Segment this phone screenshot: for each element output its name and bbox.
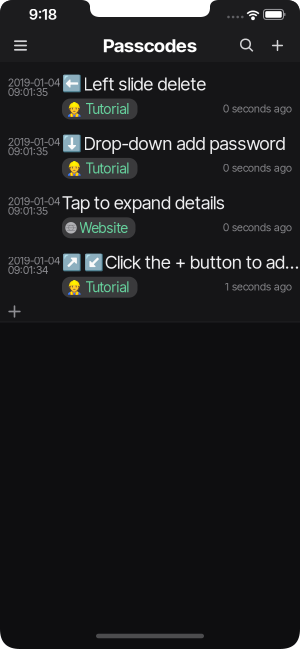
button[interactable]: Add entry: [0, 297, 300, 323]
button[interactable]: 2019-01-04: [0, 250, 300, 310]
staticText: 0 seconds ago: [223, 221, 292, 234]
staticText: 9:18: [29, 6, 57, 23]
staticText: Drop-down add password: [83, 132, 285, 154]
button[interactable]: Menu: [7, 33, 33, 57]
staticText: ⬇️: [62, 134, 82, 153]
staticText: 👷: [65, 101, 82, 117]
staticText: 09:01:35: [8, 85, 48, 98]
staticText: Left slide delete: [83, 73, 206, 95]
staticText: 0 seconds ago: [223, 161, 292, 174]
staticText: 09:01:34: [8, 264, 48, 277]
staticText: Tap to expand details: [62, 192, 225, 214]
button[interactable]: 2019-01-04: [0, 72, 300, 131]
staticText: 09:01:35: [8, 204, 48, 217]
button[interactable]: 2019-01-04: [0, 131, 300, 191]
staticText: 2019-01-04: [8, 76, 60, 89]
staticText: ⬅️: [62, 75, 82, 93]
button[interactable]: Search: [239, 37, 255, 53]
button[interactable]: Add: [269, 37, 285, 53]
staticText: 1 seconds ago: [225, 280, 292, 293]
staticText: 👷: [65, 280, 82, 295]
staticText: ↙️: [83, 253, 103, 271]
staticText: Website: [79, 219, 127, 236]
staticText: 2019-01-04: [8, 135, 60, 148]
staticText: 09:01:35: [8, 145, 48, 158]
staticText: 👷: [65, 161, 82, 176]
staticText: Tutorial: [85, 160, 129, 177]
staticText: Tutorial: [85, 100, 129, 117]
staticText: 2019-01-04: [8, 254, 60, 267]
staticText: ↗️: [62, 253, 82, 271]
staticText: 2019-01-04: [8, 195, 60, 208]
staticText: Click the + button to add…: [105, 251, 300, 273]
staticText: Tutorial: [85, 279, 129, 296]
staticText: Passcodes: [103, 34, 197, 57]
button[interactable]: 2019-01-04: [0, 191, 300, 250]
staticText: 0 seconds ago: [223, 102, 292, 115]
